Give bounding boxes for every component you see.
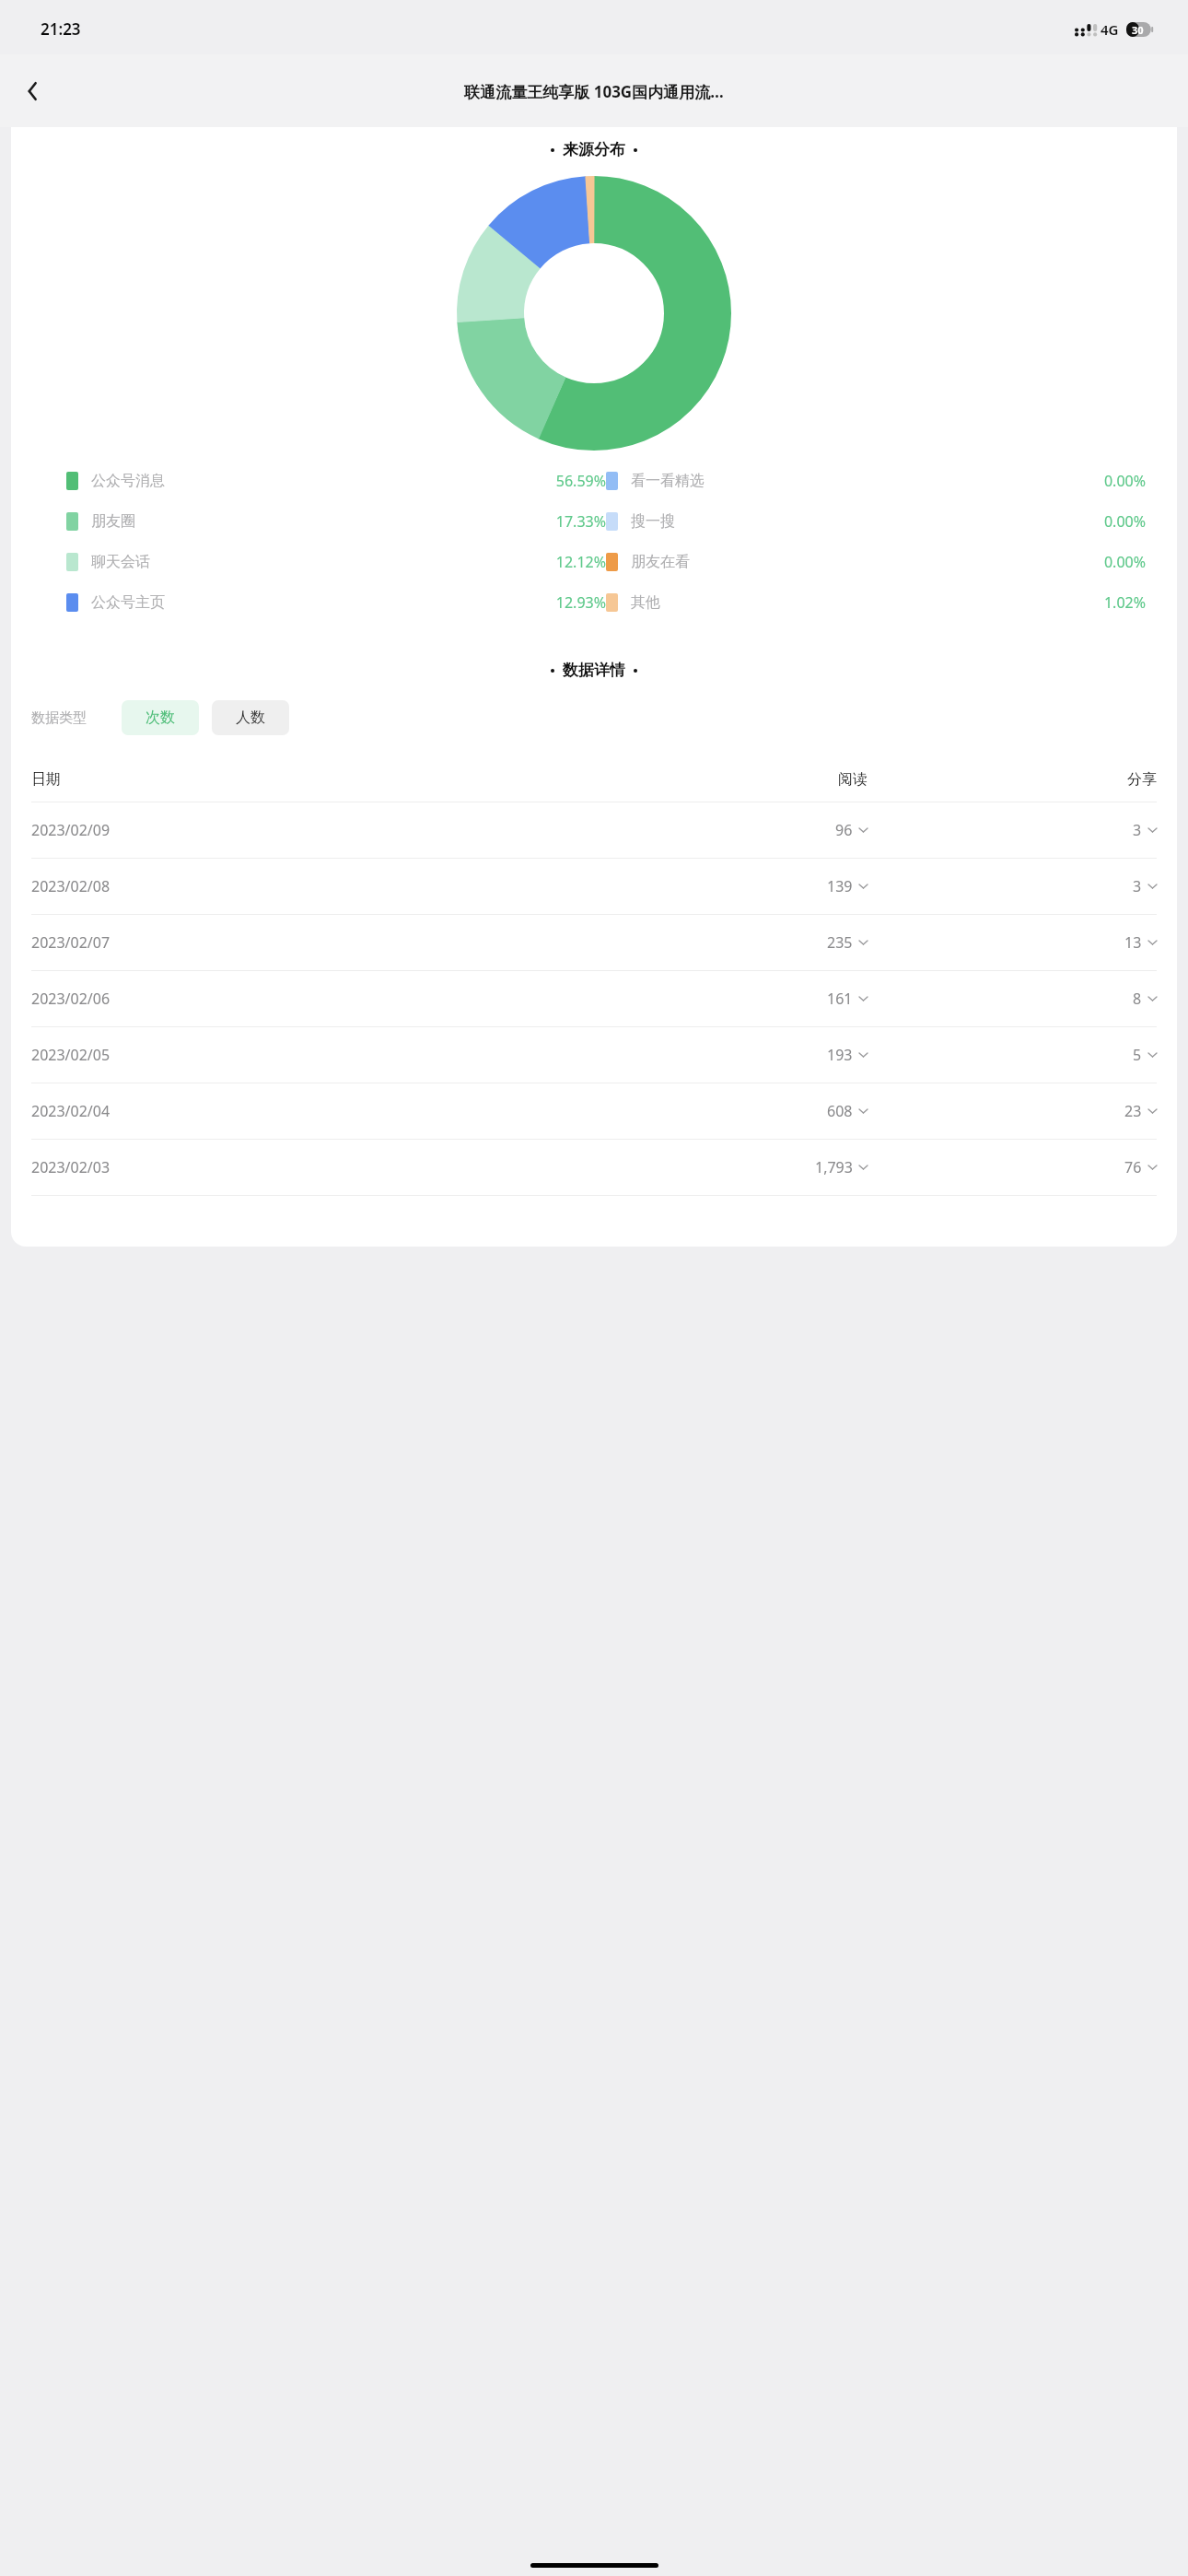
staticText: 次数 <box>146 708 175 727</box>
staticText: 235 <box>827 932 853 953</box>
staticText: 5 <box>1133 1045 1142 1065</box>
button[interactable]: 2023/02/04 <box>11 1083 1177 1139</box>
staticText: 2023/02/08 <box>31 876 111 896</box>
button[interactable]: 2023/02/03 <box>11 1140 1177 1195</box>
staticText: 朋友在看 <box>631 553 690 571</box>
button[interactable]: 公众号主页 <box>66 592 606 613</box>
staticText: 161 <box>827 989 853 1009</box>
button[interactable]: Back <box>11 69 55 113</box>
staticText: 2023/02/05 <box>31 1045 111 1065</box>
staticText: 阅读 <box>838 770 868 789</box>
button[interactable]: 2023/02/09 <box>11 802 1177 858</box>
staticText: 21:23 <box>41 18 81 40</box>
button[interactable]: 聊天会话 <box>66 552 606 572</box>
button[interactable]: 搜一搜 <box>606 511 1146 532</box>
button[interactable]: 朋友在看 <box>606 552 1146 572</box>
button[interactable]: 其他 <box>606 592 1146 613</box>
staticText: 0.00% <box>727 511 1146 532</box>
staticText: 193 <box>827 1045 853 1065</box>
staticText: 2023/02/06 <box>31 989 111 1009</box>
staticText: 17.33% <box>187 511 606 532</box>
staticText: 1.02% <box>727 592 1146 613</box>
staticText: 分享 <box>1127 770 1157 789</box>
staticText: 2023/02/09 <box>31 820 111 840</box>
staticText: 12.12% <box>187 552 606 572</box>
staticText: 2023/02/07 <box>31 932 111 953</box>
staticText: 2023/02/03 <box>31 1157 111 1177</box>
staticText: 看一看精选 <box>631 472 705 490</box>
staticText: 0.00% <box>727 552 1146 572</box>
staticText: 数据详情 <box>563 661 625 680</box>
staticText: 76 <box>1124 1157 1142 1177</box>
staticText: 2023/02/04 <box>31 1101 111 1121</box>
staticText: 23 <box>1124 1101 1142 1121</box>
button[interactable]: 2023/02/06 <box>11 971 1177 1026</box>
staticText: 3 <box>1133 820 1142 840</box>
staticText: 日期 <box>31 770 61 789</box>
staticText: 0.00% <box>727 471 1146 491</box>
staticText: 公众号主页 <box>91 593 165 612</box>
staticText: 139 <box>827 876 853 896</box>
button[interactable]: 2023/02/08 <box>11 859 1177 914</box>
button[interactable]: 人数 <box>212 700 289 735</box>
staticText: 4G <box>1101 20 1119 39</box>
staticText: 1,793 <box>815 1157 853 1177</box>
staticText: 3 <box>1133 876 1142 896</box>
button[interactable]: 看一看精选 <box>606 471 1146 491</box>
staticText: 搜一搜 <box>631 512 675 531</box>
staticText: 联通流量王纯享版 103G国内通用流… <box>464 81 724 102</box>
staticText: 12.93% <box>187 592 606 613</box>
button[interactable]: 2023/02/05 <box>11 1027 1177 1083</box>
staticText: 56.59% <box>187 471 606 491</box>
staticText: 公众号消息 <box>91 472 165 490</box>
staticText: 96 <box>835 820 853 840</box>
staticText: 数据类型 <box>31 709 87 727</box>
staticText: 30 <box>1132 23 1144 37</box>
staticText: 608 <box>827 1101 853 1121</box>
staticText: 其他 <box>631 593 660 612</box>
staticText: 8 <box>1133 989 1142 1009</box>
staticText: 朋友圈 <box>91 512 135 531</box>
button[interactable]: 次数 <box>122 700 199 735</box>
staticText: 人数 <box>236 708 265 727</box>
staticText: 13 <box>1124 932 1142 953</box>
button[interactable]: 朋友圈 <box>66 511 606 532</box>
button[interactable]: 公众号消息 <box>66 471 606 491</box>
staticText: 聊天会话 <box>91 553 150 571</box>
staticText: 来源分布 <box>563 140 625 159</box>
button[interactable]: 2023/02/07 <box>11 915 1177 970</box>
